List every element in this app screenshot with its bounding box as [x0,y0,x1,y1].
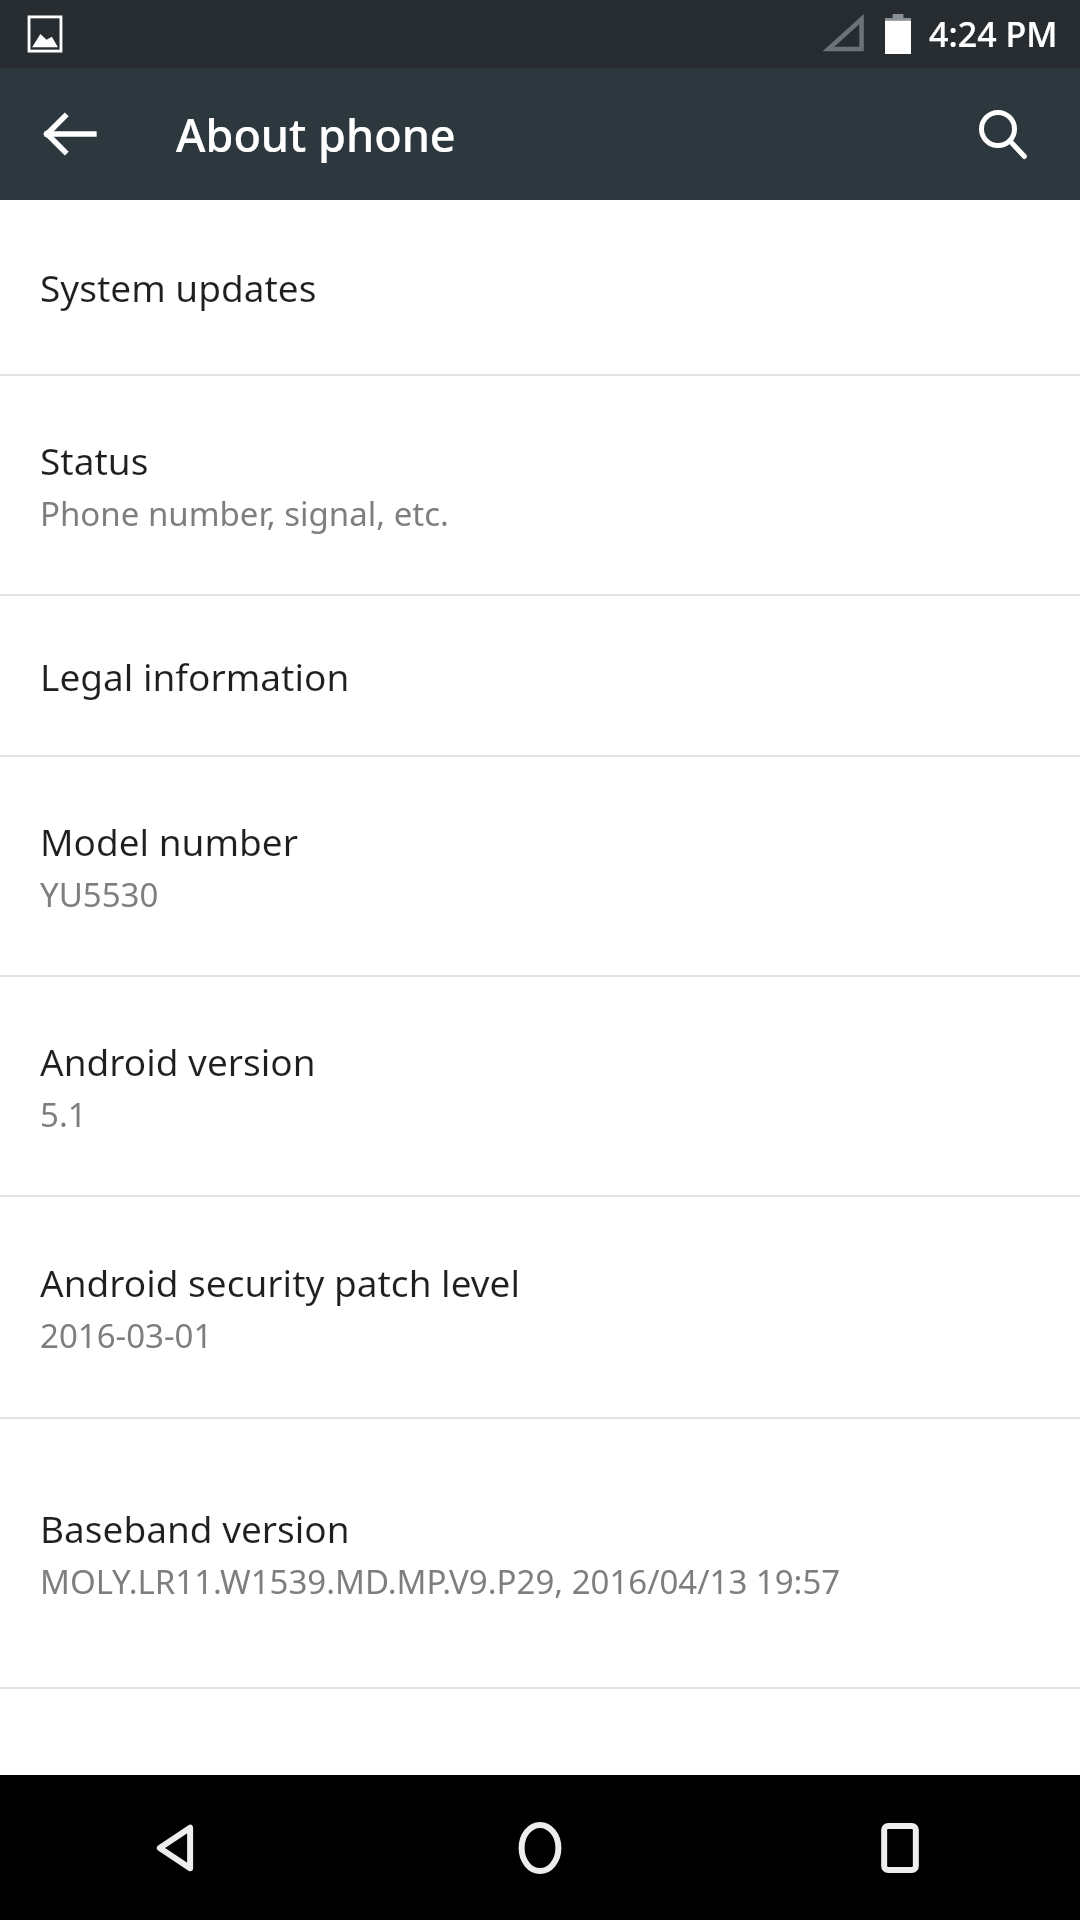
button[interactable]: Status [0,376,1080,594]
button[interactable]: Back [22,86,118,182]
button[interactable]: Back [0,1775,360,1920]
staticText: Phone number, signal, etc. [40,491,449,536]
staticText: About phone [176,104,456,165]
button[interactable]: System updates [0,200,1080,374]
staticText: Android security patch level [40,1257,521,1307]
staticText: 4:24 PM [929,11,1058,57]
staticText: Android version [40,1036,316,1086]
staticText: Legal information [40,651,350,701]
button[interactable]: Recent apps [720,1775,1080,1920]
staticText: Model number [40,816,298,866]
button[interactable]: Android version [0,977,1080,1195]
staticText: 5.1 [40,1092,87,1137]
button[interactable]: Baseband version [0,1419,1080,1687]
button[interactable]: Android security patch level [0,1197,1080,1417]
button[interactable]: Legal information [0,596,1080,755]
staticText: Baseband version [40,1503,350,1553]
staticText: System updates [40,262,317,312]
staticText: Status [40,435,149,485]
staticText: MOLY.LR11.W1539.MD.MP.V9.P29, 2016/04/13… [40,1559,841,1604]
staticText: YU5530 [40,872,159,917]
button[interactable]: Search [954,86,1050,182]
staticText: 2016-03-01 [40,1313,213,1358]
button[interactable]: Home [360,1775,720,1920]
button[interactable]: Model number [0,757,1080,975]
